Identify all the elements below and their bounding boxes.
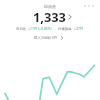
staticText: 前日比 <box>16 27 27 31</box>
staticText: +37円 <box>74 26 84 31</box>
staticText: +11円 (+0.83%) <box>28 26 52 31</box>
button[interactable]: 購入可能額 0円 <box>0 35 99 40</box>
staticText: 総資産 <box>44 4 56 9</box>
staticText: 1,333 <box>33 8 66 25</box>
staticText: 評価損益 <box>58 27 72 31</box>
button[interactable]: More options <box>83 4 95 8</box>
button[interactable]: 1,333 <box>0 8 99 25</box>
staticText: 購入可能額 0円 <box>34 35 58 40</box>
